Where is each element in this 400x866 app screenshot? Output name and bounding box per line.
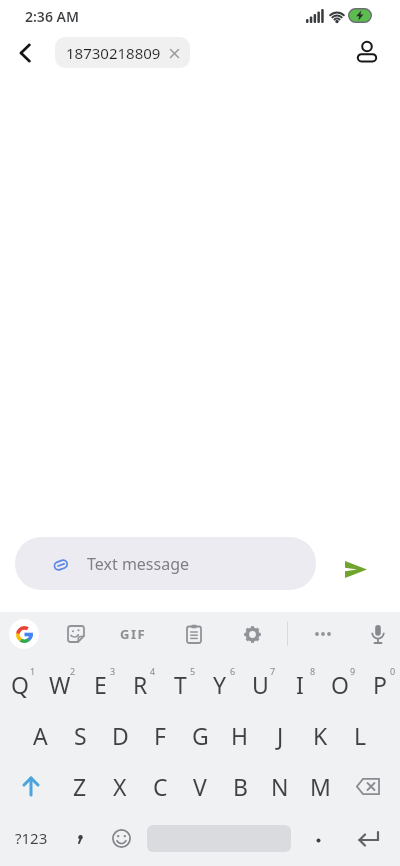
button[interactable]: L	[340, 710, 380, 760]
button[interactable]: U	[240, 659, 280, 709]
staticText: S	[74, 720, 87, 751]
staticText: I	[296, 669, 304, 700]
button[interactable]	[348, 813, 388, 863]
button[interactable]: J	[260, 710, 300, 760]
staticText: Y	[213, 669, 227, 700]
button[interactable]: ?123	[9, 813, 53, 863]
button[interactable]	[11, 761, 51, 811]
staticText: H	[231, 720, 249, 751]
staticText: W	[49, 669, 71, 700]
staticText: 2:36 AM	[25, 7, 79, 26]
button[interactable]	[348, 761, 388, 811]
staticText: Q	[11, 669, 29, 700]
staticText: R	[133, 669, 148, 700]
button[interactable]	[238, 620, 266, 648]
button[interactable]: P	[360, 659, 400, 709]
staticText: 2	[70, 665, 76, 677]
button[interactable]: D	[100, 710, 140, 760]
button[interactable]: Q	[0, 659, 40, 709]
button[interactable]: K	[300, 710, 340, 760]
staticText: L	[354, 720, 367, 751]
staticText: 0	[390, 665, 396, 677]
staticText: GIF	[120, 625, 147, 643]
staticText: 8	[310, 665, 316, 677]
button[interactable]: C	[140, 761, 180, 811]
button[interactable]: E	[80, 659, 120, 709]
button[interactable]	[364, 618, 392, 650]
button[interactable]: O	[320, 659, 360, 709]
button[interactable]	[308, 814, 328, 864]
staticText: M	[310, 771, 331, 802]
staticText: N	[271, 771, 289, 802]
staticText: 6	[230, 665, 236, 677]
button[interactable]: Y	[200, 659, 240, 709]
staticText: B	[233, 771, 248, 802]
staticText: D	[112, 720, 129, 751]
staticText: 18730218809	[66, 43, 161, 63]
staticText: 1	[30, 665, 36, 677]
button[interactable]: R	[120, 659, 160, 709]
button[interactable]: T	[160, 659, 200, 709]
button[interactable]: A	[20, 710, 60, 760]
button[interactable]: S	[60, 710, 100, 760]
staticText: 5	[190, 665, 196, 677]
staticText: 9	[350, 665, 356, 677]
staticText: 4	[150, 665, 156, 677]
button[interactable]	[338, 553, 374, 585]
staticText: G	[192, 720, 209, 751]
button[interactable]: B	[220, 761, 260, 811]
staticText: F	[154, 720, 166, 751]
button[interactable]: F	[140, 710, 180, 760]
staticText: Z	[73, 771, 87, 802]
staticText: Text message	[87, 553, 190, 575]
button[interactable]: H	[220, 710, 260, 760]
button[interactable]: X	[100, 761, 140, 811]
staticText: 3	[110, 665, 116, 677]
staticText: K	[313, 720, 328, 751]
button[interactable]: M	[300, 761, 340, 811]
button[interactable]: W	[40, 659, 80, 709]
button[interactable]	[9, 619, 39, 649]
staticText: U	[252, 669, 269, 700]
button[interactable]	[351, 34, 381, 66]
button[interactable]: I	[280, 659, 320, 709]
staticText: C	[153, 771, 168, 802]
staticText: J	[277, 720, 284, 751]
button[interactable]	[180, 620, 208, 648]
button[interactable]: 18730218809	[55, 37, 190, 68]
button[interactable]: N	[260, 761, 300, 811]
staticText: ?123	[15, 828, 48, 848]
staticText: O	[331, 669, 349, 700]
button[interactable]	[12, 40, 40, 66]
button[interactable]: V	[180, 761, 220, 811]
staticText: V	[193, 771, 207, 802]
button[interactable]	[104, 813, 138, 863]
button[interactable]: G	[180, 710, 220, 760]
staticText: 7	[270, 665, 276, 677]
staticText: E	[94, 669, 107, 700]
button[interactable]	[309, 622, 337, 646]
staticText: A	[33, 720, 48, 751]
button[interactable]: Text message	[15, 537, 316, 590]
button[interactable]: GIF	[113, 622, 153, 646]
button[interactable]: Z	[60, 761, 100, 811]
button[interactable]	[70, 813, 90, 863]
staticText: T	[174, 669, 187, 700]
staticText: X	[113, 771, 127, 802]
staticText: P	[373, 669, 387, 700]
button[interactable]	[62, 620, 90, 648]
